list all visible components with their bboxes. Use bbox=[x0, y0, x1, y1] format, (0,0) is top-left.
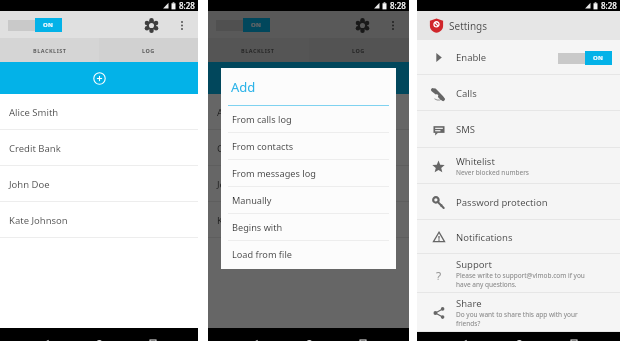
staticText: Calls bbox=[456, 87, 477, 100]
staticText: BLACKLIST bbox=[241, 47, 275, 54]
button[interactable]: Home bbox=[300, 328, 318, 341]
staticText: Credit Bank bbox=[217, 142, 269, 155]
staticText: From messages log bbox=[232, 167, 316, 180]
button[interactable]: BLACKLIST bbox=[0, 38, 99, 62]
staticText: 8:28 bbox=[390, 0, 406, 11]
staticText: BLACKLIST bbox=[33, 47, 67, 54]
button[interactable]: Settings bbox=[140, 14, 162, 36]
staticText: Begins with bbox=[232, 221, 283, 234]
staticText: Alice Smith bbox=[217, 106, 267, 119]
staticText: LOG bbox=[352, 47, 365, 54]
button[interactable]: Password protection bbox=[417, 184, 620, 220]
button[interactable]: From calls log bbox=[221, 106, 396, 133]
staticText: ON bbox=[251, 21, 262, 29]
staticText: 8:28 bbox=[601, 0, 617, 11]
button[interactable]: Back bbox=[36, 328, 54, 341]
staticText: From contacts bbox=[232, 140, 294, 153]
staticText: Add bbox=[231, 78, 256, 96]
button[interactable]: Notifications bbox=[417, 220, 620, 254]
staticText: Kate Johnson bbox=[217, 214, 276, 227]
staticText: Notifications bbox=[456, 231, 513, 244]
button[interactable]: SMS bbox=[417, 111, 620, 148]
button[interactable]: Load from file bbox=[221, 241, 396, 268]
staticText: LOG bbox=[142, 47, 155, 54]
staticText: Alice Smith bbox=[9, 106, 59, 119]
staticText: From calls log bbox=[232, 113, 292, 126]
staticText: ON bbox=[43, 21, 54, 29]
button[interactable]: Add bbox=[0, 62, 198, 94]
staticText: Kate Johnson bbox=[9, 214, 68, 227]
button[interactable]: More options bbox=[175, 18, 189, 32]
button[interactable]: ON bbox=[558, 51, 612, 65]
button[interactable]: Enable bbox=[417, 40, 620, 75]
staticText: John Doe bbox=[9, 178, 50, 191]
button[interactable]: Share bbox=[417, 293, 620, 332]
staticText: John Doe bbox=[217, 178, 258, 191]
staticText: Manually bbox=[232, 194, 272, 207]
button[interactable]: Calls bbox=[417, 75, 620, 111]
button[interactable]: ? bbox=[417, 254, 620, 293]
staticText: Share bbox=[456, 297, 482, 310]
button[interactable]: Recents bbox=[565, 332, 583, 341]
button[interactable]: Home bbox=[90, 328, 108, 341]
staticText: Support bbox=[456, 258, 492, 271]
button[interactable]: ON bbox=[216, 18, 270, 32]
staticText: Load from file bbox=[232, 248, 292, 261]
staticText: Password protection bbox=[456, 196, 548, 209]
button[interactable]: Back bbox=[454, 332, 472, 341]
button[interactable]: From contacts bbox=[221, 133, 396, 160]
button[interactable]: From messages log bbox=[221, 160, 396, 187]
button[interactable]: Recents bbox=[144, 328, 162, 341]
button[interactable]: Begins with bbox=[221, 214, 396, 241]
button[interactable]: Alice Smith bbox=[0, 94, 198, 130]
button[interactable]: ON bbox=[8, 18, 62, 32]
staticText: Do you want to share this app with your … bbox=[456, 310, 578, 328]
staticText: Enable bbox=[456, 51, 487, 64]
staticText: ? bbox=[436, 268, 442, 280]
button[interactable]: Back bbox=[245, 328, 263, 341]
staticText: Never blocked numbers bbox=[456, 168, 529, 177]
button[interactable]: Whitelist bbox=[417, 148, 620, 184]
button[interactable]: Recents bbox=[354, 328, 372, 341]
button[interactable]: Credit Bank bbox=[0, 130, 198, 166]
staticText: Settings bbox=[449, 19, 488, 33]
button[interactable]: Home bbox=[510, 332, 528, 341]
button[interactable]: John Doe bbox=[0, 166, 198, 202]
staticText: Please write to support@vlmob.com if you… bbox=[456, 271, 585, 289]
staticText: Credit Bank bbox=[9, 142, 61, 155]
staticText: Whitelist bbox=[456, 155, 495, 168]
staticText: SMS bbox=[456, 123, 476, 136]
button[interactable]: LOG bbox=[99, 38, 198, 62]
button[interactable]: Manually bbox=[221, 187, 396, 214]
staticText: ON bbox=[593, 54, 604, 62]
button[interactable]: Kate Johnson bbox=[0, 202, 198, 238]
staticText: 8:28 bbox=[179, 0, 195, 11]
